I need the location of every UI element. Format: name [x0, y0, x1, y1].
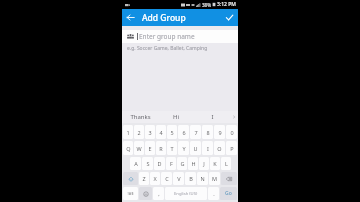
button[interactable]: .: [208, 187, 219, 200]
button[interactable]: M: [209, 172, 220, 185]
button[interactable]: P: [226, 141, 237, 155]
button[interactable]: V: [173, 172, 184, 185]
button[interactable]: F: [166, 157, 176, 170]
button[interactable]: 2: [134, 125, 144, 139]
staticText: 8: [206, 129, 210, 136]
button[interactable]: E: [145, 141, 155, 155]
staticText: G: [180, 160, 185, 167]
staticText: 6: [182, 129, 186, 136]
button[interactable]: 9: [214, 125, 225, 139]
button[interactable]: H: [188, 157, 198, 170]
staticText: Thanks: [130, 113, 151, 121]
staticText: E: [148, 145, 152, 152]
staticText: 9: [218, 129, 222, 136]
staticText: English (US): [174, 191, 198, 197]
button[interactable]: R: [156, 141, 166, 155]
staticText: J: [203, 160, 205, 167]
staticText: 38%: [202, 2, 211, 8]
staticText: I: [211, 113, 214, 121]
staticText: M: [212, 175, 217, 182]
button[interactable]: W: [134, 141, 144, 155]
button[interactable]: Q: [123, 141, 133, 155]
staticText: I: [207, 145, 209, 152]
staticText: A: [134, 160, 138, 167]
button[interactable]: K: [210, 157, 220, 170]
button[interactable]: I: [194, 111, 230, 123]
button[interactable]: Backspace: [221, 172, 237, 185]
button[interactable]: ,: [153, 187, 164, 200]
button[interactable]: Go: [220, 187, 237, 200]
button[interactable]: N: [197, 172, 208, 185]
button[interactable]: L: [221, 157, 231, 170]
button[interactable]: S: [142, 157, 153, 170]
button[interactable]: 3: [145, 125, 155, 139]
button[interactable]: 4: [156, 125, 166, 139]
staticText: Hi: [173, 113, 179, 121]
staticText: B: [189, 175, 193, 182]
button[interactable]: I: [202, 141, 213, 155]
staticText: 3:12 PM: [217, 1, 236, 8]
staticText: 5: [170, 129, 174, 136]
button[interactable]: Y: [178, 141, 189, 155]
button[interactable]: Save group: [221, 9, 238, 26]
staticText: Add Group: [142, 12, 186, 24]
button[interactable]: Hi: [158, 111, 194, 123]
staticText: L: [225, 160, 228, 167]
staticText: 0: [230, 129, 234, 136]
staticText: Q: [126, 145, 131, 152]
staticText: Z: [142, 175, 146, 182]
staticText: !#$: [127, 191, 134, 197]
button[interactable]: C: [161, 172, 172, 185]
button[interactable]: 8: [202, 125, 213, 139]
staticText: Go: [225, 190, 232, 197]
staticText: Y: [182, 145, 186, 152]
staticText: X: [153, 175, 157, 182]
button[interactable]: English (US): [165, 187, 207, 200]
button[interactable]: U: [190, 141, 201, 155]
button[interactable]: More suggestions: [230, 111, 238, 123]
button[interactable]: Emoji: [139, 187, 152, 200]
button[interactable]: J: [199, 157, 209, 170]
button[interactable]: Z: [139, 172, 149, 185]
staticText: D: [157, 160, 162, 167]
button[interactable]: 0: [226, 125, 237, 139]
staticText: N: [200, 175, 205, 182]
button[interactable]: 7: [190, 125, 201, 139]
button[interactable]: 6: [178, 125, 189, 139]
staticText: C: [165, 175, 169, 182]
staticText: 4: [159, 129, 163, 136]
staticText: K: [213, 160, 217, 167]
staticText: ,: [158, 190, 160, 197]
staticText: O: [217, 145, 222, 152]
staticText: 7: [194, 129, 198, 136]
button[interactable]: Enter group name: [122, 30, 238, 43]
staticText: U: [193, 145, 198, 152]
button[interactable]: B: [185, 172, 196, 185]
staticText: Enter group name: [139, 32, 195, 41]
staticText: 3: [148, 129, 152, 136]
staticText: P: [230, 145, 234, 152]
button[interactable]: G: [177, 157, 187, 170]
staticText: S: [146, 160, 150, 167]
staticText: H: [191, 160, 196, 167]
button[interactable]: O: [214, 141, 225, 155]
staticText: V: [177, 175, 181, 182]
button[interactable]: T: [167, 141, 177, 155]
staticText: W: [136, 145, 142, 152]
staticText: F: [170, 160, 173, 167]
button[interactable]: Thanks: [122, 111, 158, 123]
button[interactable]: X: [150, 172, 160, 185]
staticText: e.g. Soccer Game, Ballet, Camping: [127, 45, 208, 52]
button[interactable]: Back: [122, 9, 139, 26]
staticText: 1: [126, 129, 130, 136]
staticText: .: [213, 190, 215, 197]
button[interactable]: D: [154, 157, 165, 170]
button[interactable]: 1: [123, 125, 133, 139]
staticText: R: [159, 145, 163, 152]
button[interactable]: 5: [167, 125, 177, 139]
staticText: 2: [137, 129, 141, 136]
button[interactable]: !#$: [123, 187, 138, 200]
button[interactable]: A: [130, 157, 141, 170]
staticText: T: [170, 145, 174, 152]
button[interactable]: Shift: [123, 172, 138, 185]
